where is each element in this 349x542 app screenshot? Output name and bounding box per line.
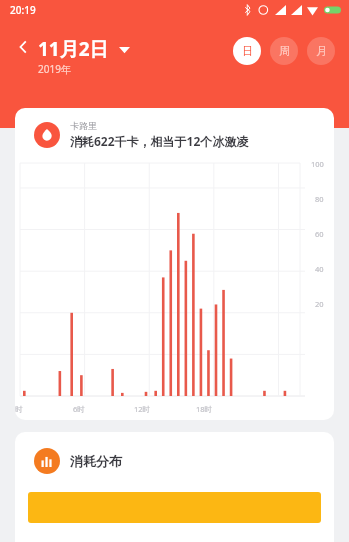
staticText: 卡路里 bbox=[70, 120, 97, 131]
button[interactable]: 月 bbox=[307, 37, 335, 65]
staticText: 周 bbox=[279, 44, 290, 58]
staticText: 2019年 bbox=[38, 62, 71, 76]
button[interactable]: 日 bbox=[233, 37, 261, 65]
button[interactable]: 消耗分布 bbox=[15, 432, 334, 542]
button[interactable] bbox=[28, 492, 321, 523]
staticText: 11月2日 bbox=[38, 36, 109, 62]
staticText: 80 bbox=[315, 194, 324, 204]
staticText: 消耗分布 bbox=[70, 453, 122, 469]
staticText: 18时 bbox=[196, 404, 213, 414]
button[interactable]: Back bbox=[12, 36, 34, 58]
staticText: 月 bbox=[316, 44, 327, 58]
staticText: 0时 bbox=[15, 404, 23, 414]
staticText: 100 bbox=[311, 159, 324, 169]
button[interactable]: 周 bbox=[270, 37, 298, 65]
staticText: 40 bbox=[315, 264, 324, 274]
staticText: 12时 bbox=[134, 404, 151, 414]
staticText: 60 bbox=[315, 229, 324, 239]
staticText: 消耗622千卡，相当于12个冰激凌 bbox=[70, 133, 249, 149]
button[interactable]: Choose date bbox=[116, 41, 132, 57]
staticText: 20 bbox=[315, 299, 324, 309]
staticText: 日 bbox=[242, 44, 253, 58]
staticText: 20:19 bbox=[10, 3, 36, 17]
button[interactable]: 卡路里 bbox=[15, 108, 334, 420]
staticText: 6时 bbox=[73, 404, 85, 414]
